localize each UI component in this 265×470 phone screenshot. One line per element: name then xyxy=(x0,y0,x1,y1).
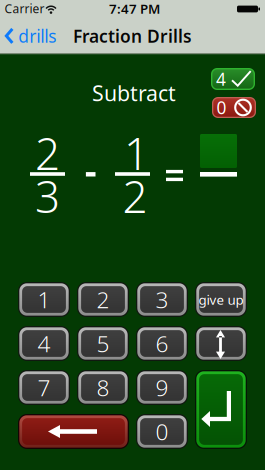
staticText: 4 xyxy=(37,328,50,358)
staticText: give up xyxy=(198,291,243,308)
button[interactable]: 9 xyxy=(136,370,188,405)
button[interactable]: 1 xyxy=(18,282,70,317)
staticText: drills xyxy=(18,24,56,47)
staticText: 1 xyxy=(124,124,149,182)
button[interactable]: Backspace xyxy=(18,414,129,449)
staticText: 8 xyxy=(96,372,109,402)
staticText: Carrier xyxy=(4,1,44,17)
button[interactable]: Back xyxy=(5,24,56,47)
staticText: Subtract xyxy=(92,79,176,107)
staticText: 0 xyxy=(216,96,226,119)
button[interactable]: Enter xyxy=(195,370,247,449)
button[interactable]: 3 xyxy=(136,282,188,317)
staticText: 0 xyxy=(155,416,168,446)
button[interactable]: give up xyxy=(195,282,247,317)
staticText: Fraction Drills xyxy=(73,24,192,47)
staticText: 3 xyxy=(155,284,168,314)
staticText: 7:47 PM xyxy=(109,0,160,17)
button[interactable]: 0 xyxy=(136,414,188,449)
staticText: 1 xyxy=(37,284,50,314)
staticText: 7 xyxy=(37,372,50,402)
staticText: 2 xyxy=(96,284,109,314)
staticText: 2 xyxy=(122,167,147,225)
staticText: 6 xyxy=(155,328,168,358)
button[interactable]: 7 xyxy=(18,370,70,405)
staticText: 9 xyxy=(155,372,168,402)
button[interactable]: 2 xyxy=(77,282,129,317)
button[interactable]: 6 xyxy=(136,326,188,361)
button[interactable]: 4 xyxy=(18,326,70,361)
button[interactable]: 5 xyxy=(77,326,129,361)
staticText: 4 xyxy=(216,67,226,90)
button[interactable]: 8 xyxy=(77,370,129,405)
staticText: 3 xyxy=(35,167,60,225)
button[interactable]: Switch numerator and denominator xyxy=(195,326,247,361)
staticText: 2 xyxy=(35,124,60,182)
staticText: 5 xyxy=(96,328,109,358)
